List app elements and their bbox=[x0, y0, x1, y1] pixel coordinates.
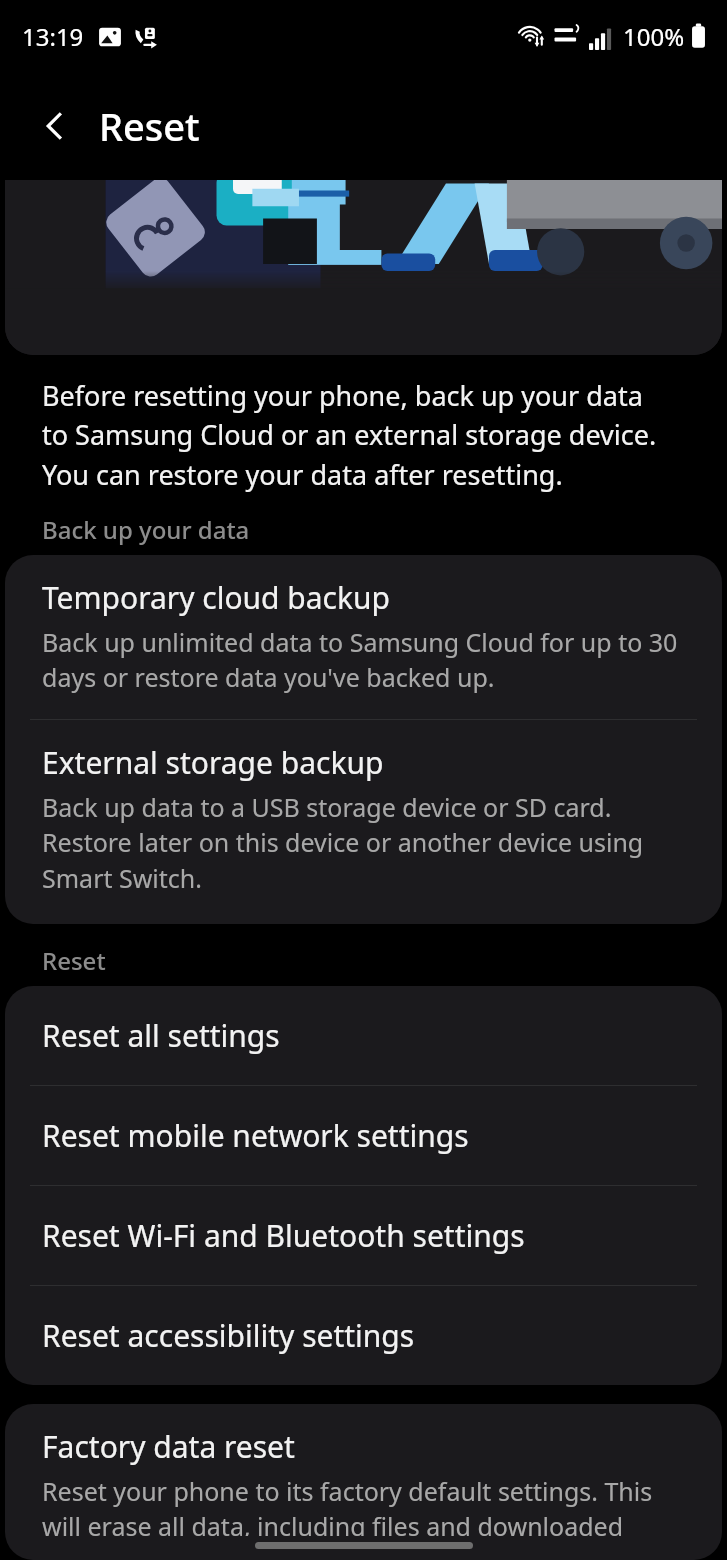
button[interactable]: Factory data reset bbox=[5, 1404, 722, 1560]
staticText: Reset your phone to its factory default … bbox=[42, 1474, 682, 1536]
staticText: Reset bbox=[42, 944, 106, 977]
staticText: Before resetting your phone, back up you… bbox=[42, 377, 667, 493]
staticText: Back up unlimited data to Samsung Cloud … bbox=[42, 625, 682, 695]
staticText: Reset Wi-Fi and Bluetooth settings bbox=[42, 1215, 525, 1256]
button[interactable]: Reset all settings bbox=[5, 986, 722, 1085]
staticText: Reset all settings bbox=[42, 1015, 280, 1056]
button[interactable]: Temporary cloud backup bbox=[5, 555, 722, 719]
staticText: Reset bbox=[99, 100, 200, 152]
staticText: External storage backup bbox=[42, 742, 384, 783]
button[interactable]: Back bbox=[18, 89, 92, 163]
button[interactable]: External storage backup bbox=[5, 720, 722, 920]
staticText: 100% bbox=[623, 20, 685, 53]
staticText: Reset mobile network settings bbox=[42, 1115, 469, 1156]
button[interactable]: Reset accessibility settings bbox=[5, 1286, 722, 1385]
staticText: Reset accessibility settings bbox=[42, 1315, 415, 1356]
staticText: Back up your data bbox=[42, 513, 250, 546]
staticText: Factory data reset bbox=[42, 1426, 295, 1467]
staticText: Temporary cloud backup bbox=[42, 577, 391, 618]
button[interactable]: Reset mobile network settings bbox=[5, 1086, 722, 1185]
staticText: Back up data to a USB storage device or … bbox=[42, 790, 682, 896]
button[interactable]: Reset Wi-Fi and Bluetooth settings bbox=[5, 1186, 722, 1285]
staticText: 13:19 bbox=[22, 20, 84, 53]
